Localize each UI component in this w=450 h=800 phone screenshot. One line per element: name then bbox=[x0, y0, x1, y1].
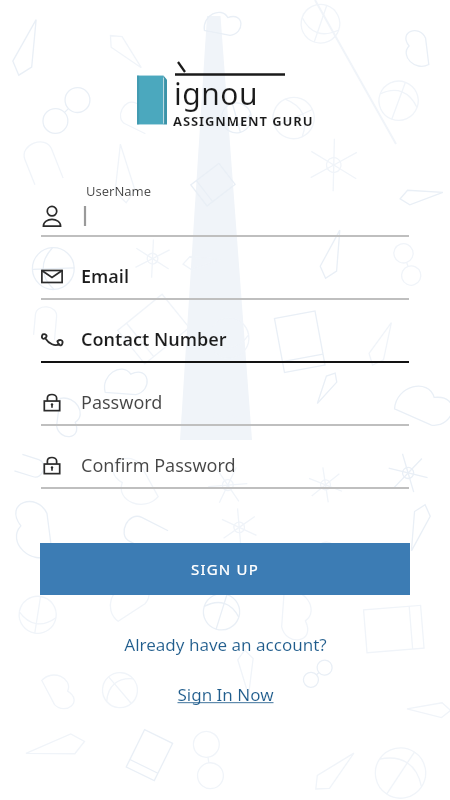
staticText: Password bbox=[81, 390, 163, 415]
button[interactable]: Password bbox=[0, 385, 450, 426]
button[interactable]: Email bbox=[0, 259, 450, 300]
button[interactable]: Already have an account? bbox=[0, 633, 450, 656]
staticText: SIGN UP bbox=[191, 559, 259, 579]
staticText: ignou bbox=[174, 73, 258, 114]
other: Email bbox=[41, 264, 63, 288]
other: Contact number bbox=[41, 327, 63, 351]
staticText: Already have an account? bbox=[124, 633, 327, 656]
button[interactable]: UserName bbox=[0, 182, 450, 237]
button[interactable]: Contact number bbox=[0, 322, 450, 363]
button[interactable]: Confirm password bbox=[0, 448, 450, 489]
staticText: Sign In Now bbox=[177, 683, 274, 706]
other: Confirm password bbox=[41, 453, 63, 477]
staticText: Email bbox=[81, 264, 130, 289]
other: User name bbox=[41, 204, 63, 228]
staticText: ASSIGNMENT GURU bbox=[173, 112, 314, 130]
staticText: Contact Number bbox=[81, 327, 227, 352]
staticText: Confirm Password bbox=[81, 453, 236, 478]
button[interactable]: Sign In Now bbox=[0, 683, 450, 706]
button[interactable]: SIGN UP bbox=[40, 543, 410, 595]
other: Password bbox=[41, 390, 63, 414]
staticText: UserName bbox=[86, 182, 152, 200]
